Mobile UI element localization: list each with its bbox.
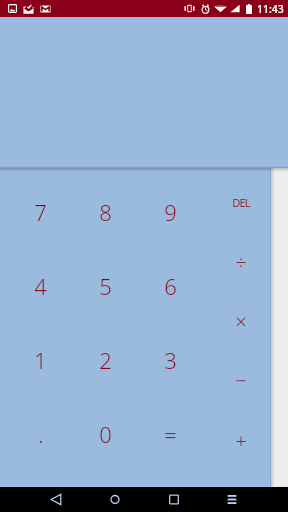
staticText: 5 (99, 271, 112, 301)
button[interactable]: 0 (73, 397, 138, 471)
staticText: 0 (99, 419, 112, 449)
staticText: 4 (34, 271, 47, 301)
staticText: + (235, 427, 247, 454)
button[interactable]: 5 (73, 249, 138, 323)
button[interactable]: 7 (8, 175, 73, 249)
button[interactable]: × (211, 292, 271, 351)
staticText: 11:43 (257, 2, 284, 16)
staticText: × (235, 308, 247, 335)
button[interactable]: . (8, 397, 73, 471)
button[interactable]: 1 (8, 323, 73, 397)
button[interactable]: 3 (138, 323, 203, 397)
staticText: 1 (34, 345, 47, 375)
button[interactable]: 4 (8, 249, 73, 323)
button[interactable]: Recents (149, 487, 199, 512)
button[interactable]: − (211, 351, 271, 410)
staticText: 8 (99, 197, 112, 227)
staticText: 3 (164, 345, 177, 375)
button[interactable]: Menu (207, 487, 257, 512)
staticText: 2 (99, 345, 112, 375)
button[interactable]: 8 (73, 175, 138, 249)
staticText: . (38, 419, 44, 449)
button[interactable]: 9 (138, 175, 203, 249)
staticText: 9 (164, 197, 177, 227)
button[interactable]: 6 (138, 249, 203, 323)
staticText: − (235, 367, 247, 394)
staticText: DEL (232, 195, 250, 210)
staticText: 6 (164, 271, 177, 301)
staticText: 7 (34, 197, 47, 227)
staticText: ÷ (235, 249, 247, 276)
button[interactable]: + (211, 411, 271, 470)
button[interactable]: = (138, 397, 203, 471)
button[interactable]: DEL (211, 173, 271, 232)
button[interactable]: Home (90, 487, 140, 512)
button[interactable]: 2 (73, 323, 138, 397)
button[interactable]: Back (31, 487, 81, 512)
button[interactable]: ÷ (211, 233, 271, 292)
staticText: = (164, 419, 177, 449)
